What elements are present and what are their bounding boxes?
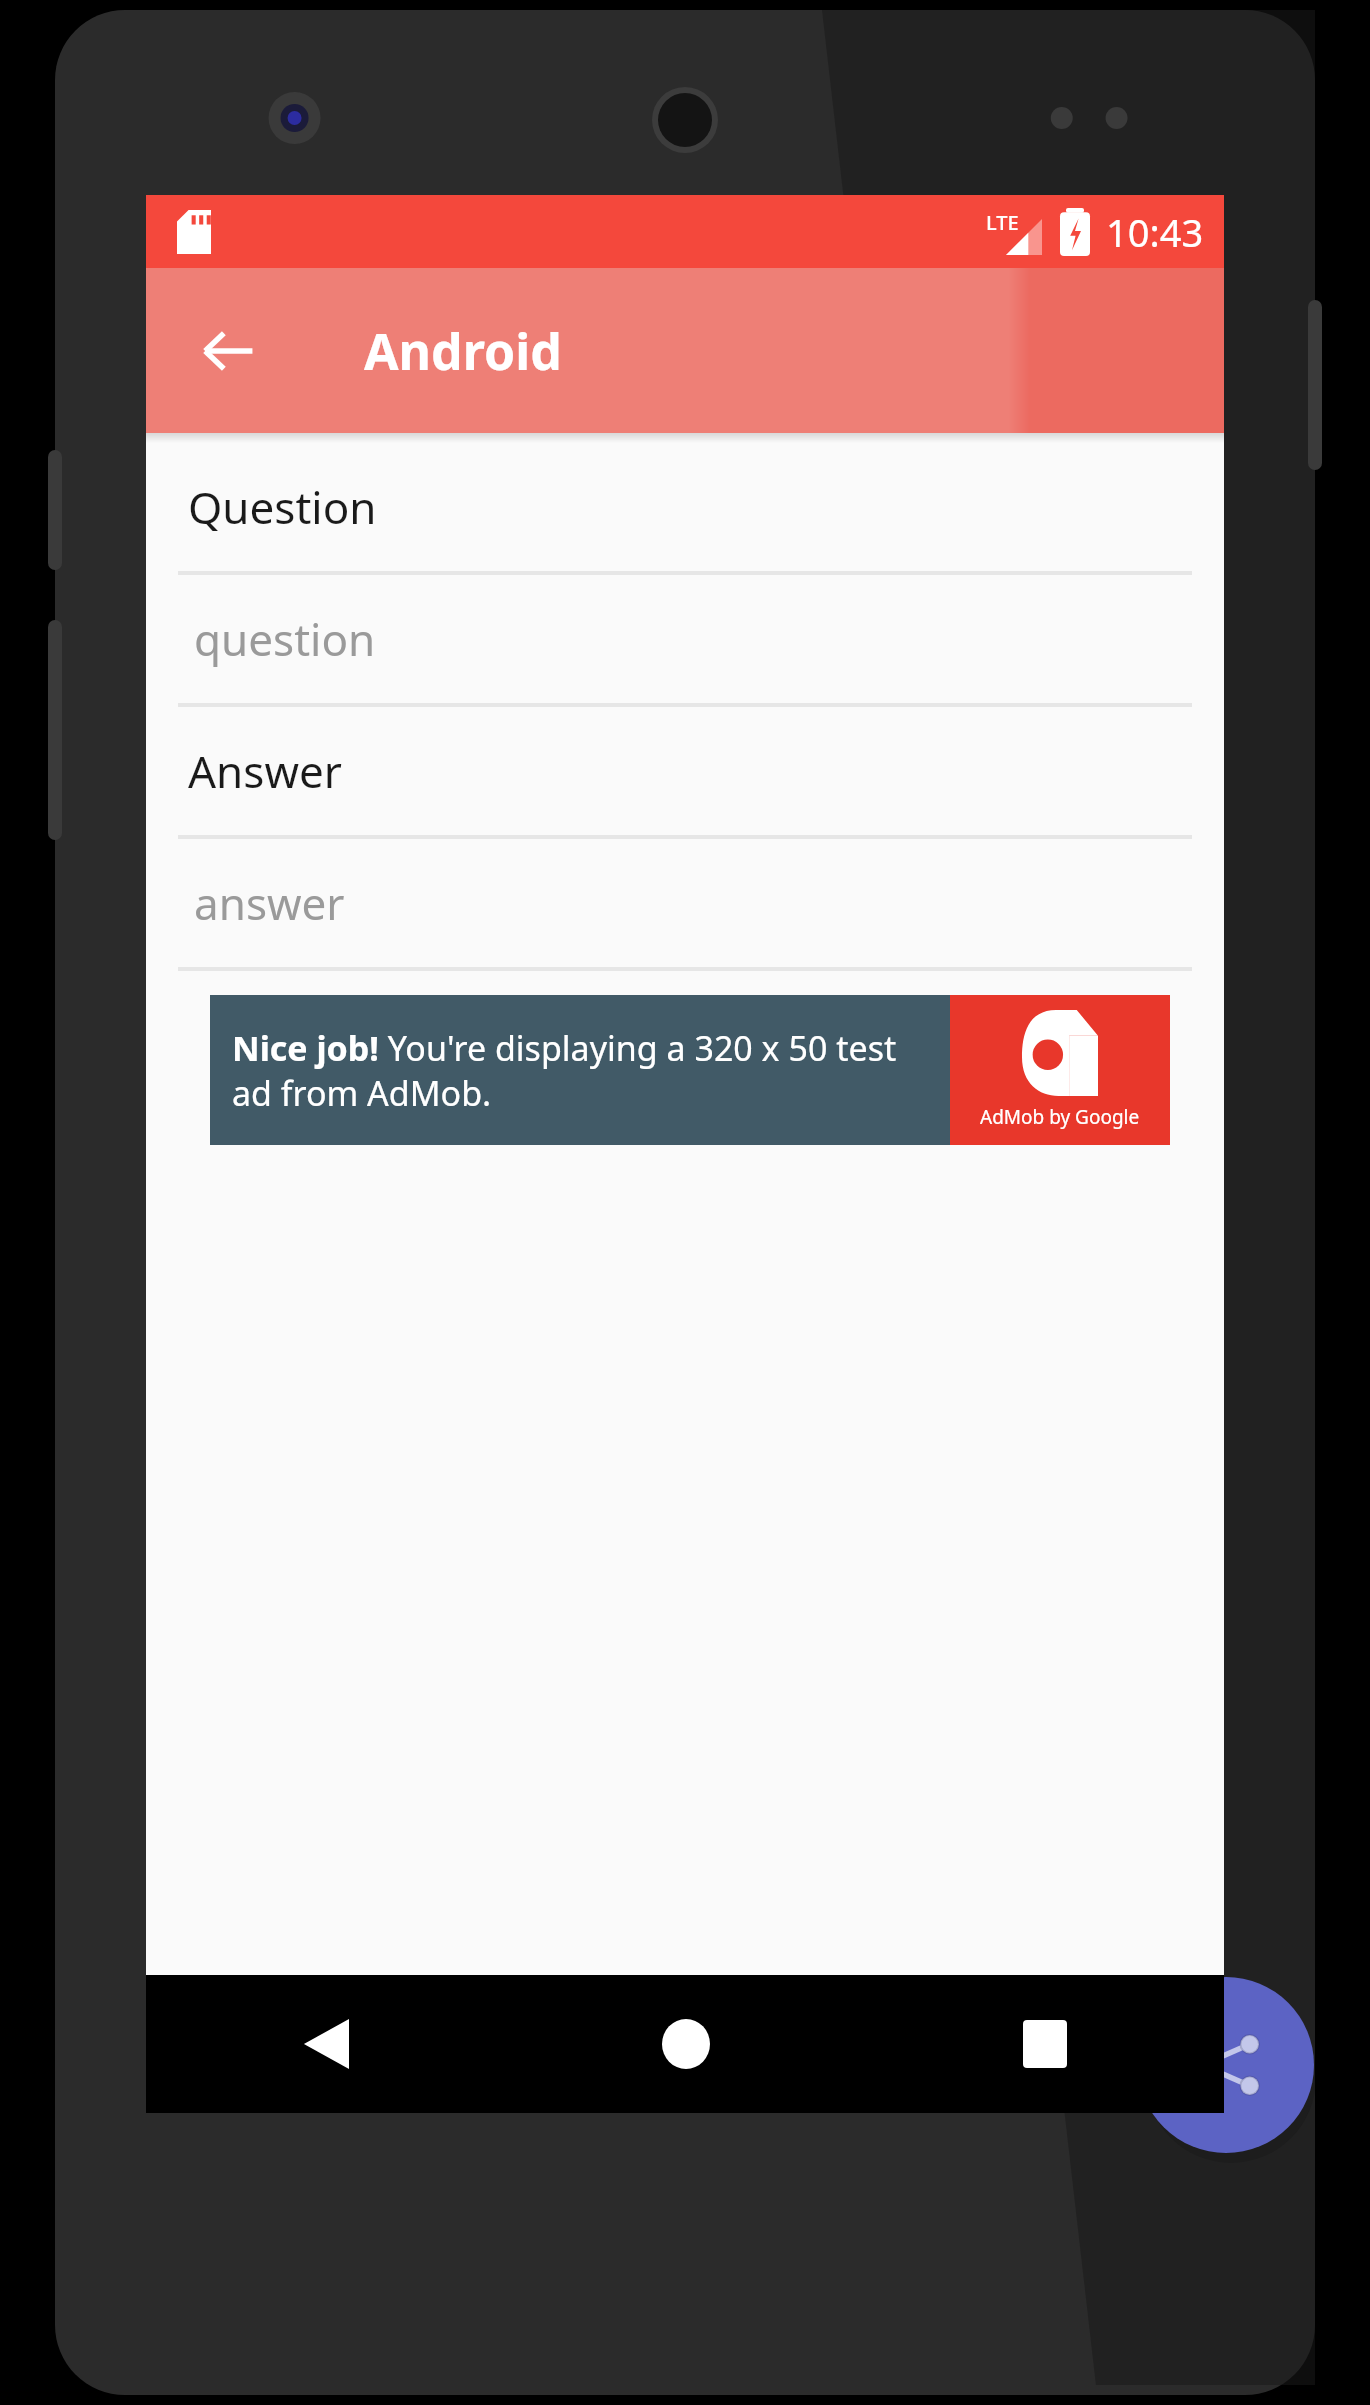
button[interactable]: Question — [146, 443, 1224, 575]
staticText: Question — [188, 477, 377, 537]
staticText: LTE — [986, 209, 1019, 236]
button[interactable]: Nice job! You're displaying a 320 x 50 t… — [210, 995, 1170, 1145]
staticText: answer — [194, 873, 345, 933]
button[interactable]: Share — [1138, 1977, 1314, 2153]
button[interactable]: Recent apps — [865, 1975, 1224, 2113]
button[interactable]: answer — [146, 839, 1224, 971]
staticText: Answer — [188, 741, 342, 801]
button[interactable]: Home — [506, 1975, 865, 2113]
staticText: Nice job! You're displaying a 320 x 50 t… — [232, 1025, 940, 1115]
button[interactable]: question — [146, 575, 1224, 707]
staticText: 10:43 — [1106, 206, 1204, 258]
button[interactable]: Back — [146, 1975, 506, 2113]
button[interactable]: Back — [186, 309, 270, 393]
button[interactable]: Answer — [146, 707, 1224, 839]
staticText: question — [194, 609, 376, 669]
staticText: Android — [364, 317, 562, 385]
staticText: AdMob by Google — [980, 1104, 1140, 1130]
